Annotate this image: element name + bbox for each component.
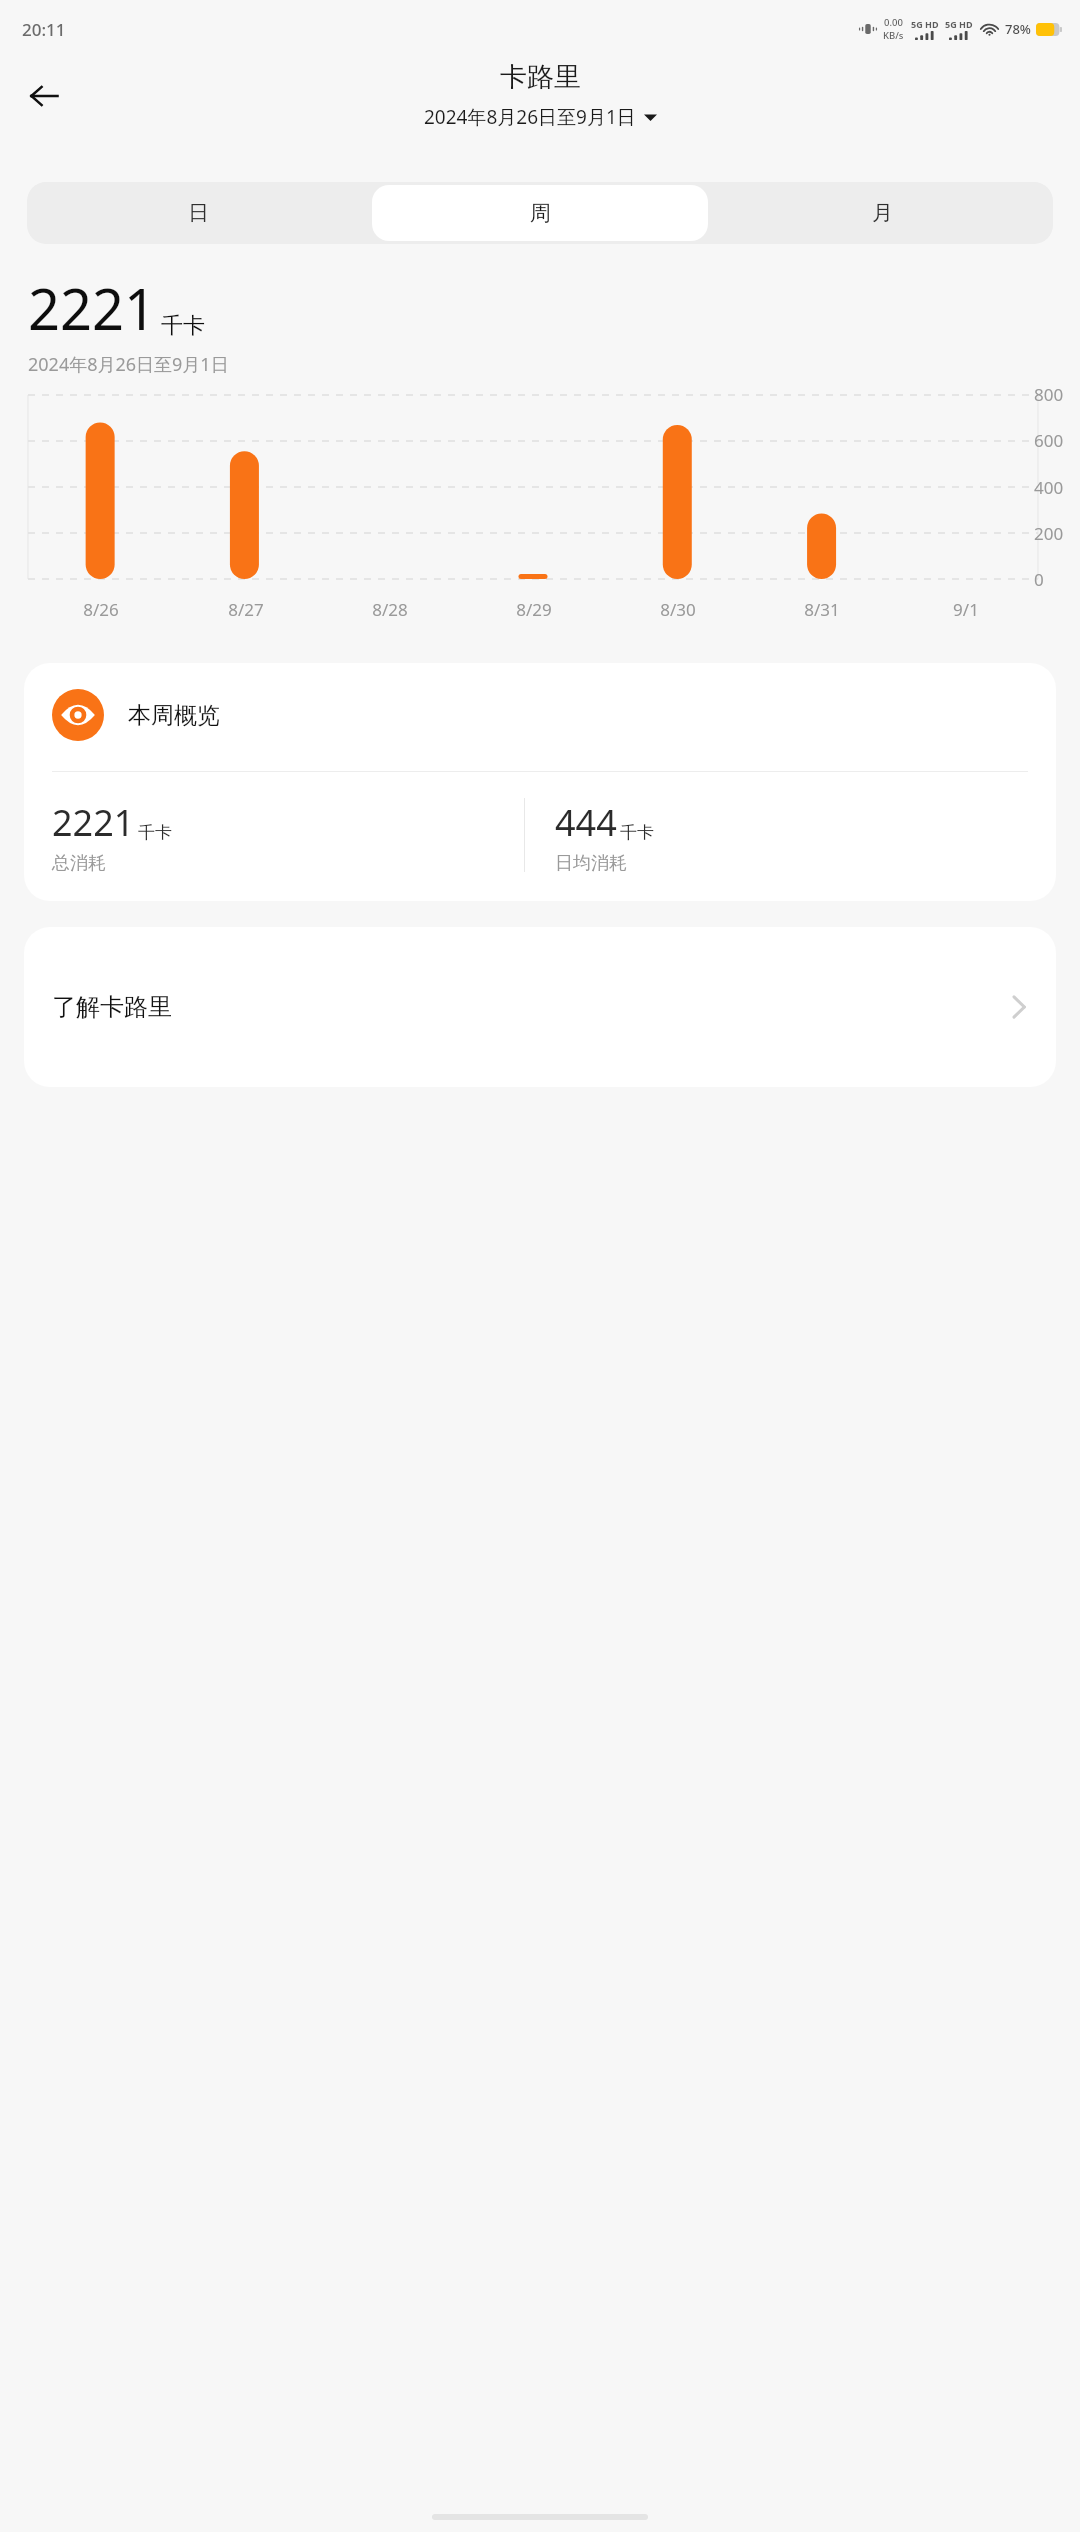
staticText: HD bbox=[959, 18, 973, 30]
staticText: 5G bbox=[945, 18, 957, 30]
staticText: 卡路里 bbox=[500, 60, 581, 94]
staticText: 400 bbox=[1034, 476, 1064, 499]
staticText: 8/30 bbox=[660, 598, 696, 621]
button[interactable]: Back bbox=[14, 66, 74, 126]
staticText: 8/27 bbox=[228, 598, 264, 621]
staticText: 8/26 bbox=[83, 598, 119, 621]
staticText: 600 bbox=[1034, 429, 1064, 452]
staticText: HD bbox=[925, 18, 939, 30]
staticText: 2221 bbox=[52, 798, 135, 847]
staticText: 千卡 bbox=[138, 822, 172, 843]
staticText: 8/31 bbox=[804, 598, 840, 621]
staticText: KB/s bbox=[883, 29, 904, 42]
staticText: 800 bbox=[1034, 383, 1064, 406]
staticText: 200 bbox=[1034, 522, 1064, 545]
staticText: 总消耗 bbox=[52, 852, 106, 875]
staticText: 周 bbox=[530, 200, 551, 226]
staticText: 444 bbox=[555, 798, 617, 847]
button[interactable]: 周 bbox=[372, 185, 708, 241]
staticText: 日均消耗 bbox=[555, 852, 627, 875]
staticText: 月 bbox=[872, 200, 893, 226]
staticText: 0 bbox=[1034, 568, 1044, 591]
staticText: 了解卡路里 bbox=[52, 992, 172, 1022]
staticText: 9/1 bbox=[953, 598, 979, 621]
staticText: 日 bbox=[188, 200, 209, 226]
staticText: 2221 bbox=[28, 270, 157, 346]
button[interactable]: 2024年8月26日至9月1日 bbox=[418, 102, 663, 132]
staticText: 78% bbox=[1005, 20, 1031, 38]
button[interactable]: 了解卡路里 bbox=[24, 927, 1056, 1087]
staticText: 8/28 bbox=[372, 598, 408, 621]
staticText: 千卡 bbox=[161, 312, 205, 340]
staticText: 本周概览 bbox=[128, 701, 220, 730]
staticText: 8/29 bbox=[516, 598, 552, 621]
button[interactable]: 月 bbox=[714, 185, 1050, 241]
staticText: 2024年8月26日至9月1日 bbox=[28, 352, 229, 377]
staticText: 0.00 bbox=[884, 16, 903, 29]
staticText: 5G bbox=[911, 18, 923, 30]
staticText: 2024年8月26日至9月1日 bbox=[424, 104, 636, 130]
button[interactable]: 日 bbox=[30, 185, 366, 241]
staticText: 千卡 bbox=[620, 822, 654, 843]
staticText: 20:11 bbox=[22, 18, 66, 41]
button[interactable]: 本周概览 bbox=[24, 663, 1056, 901]
